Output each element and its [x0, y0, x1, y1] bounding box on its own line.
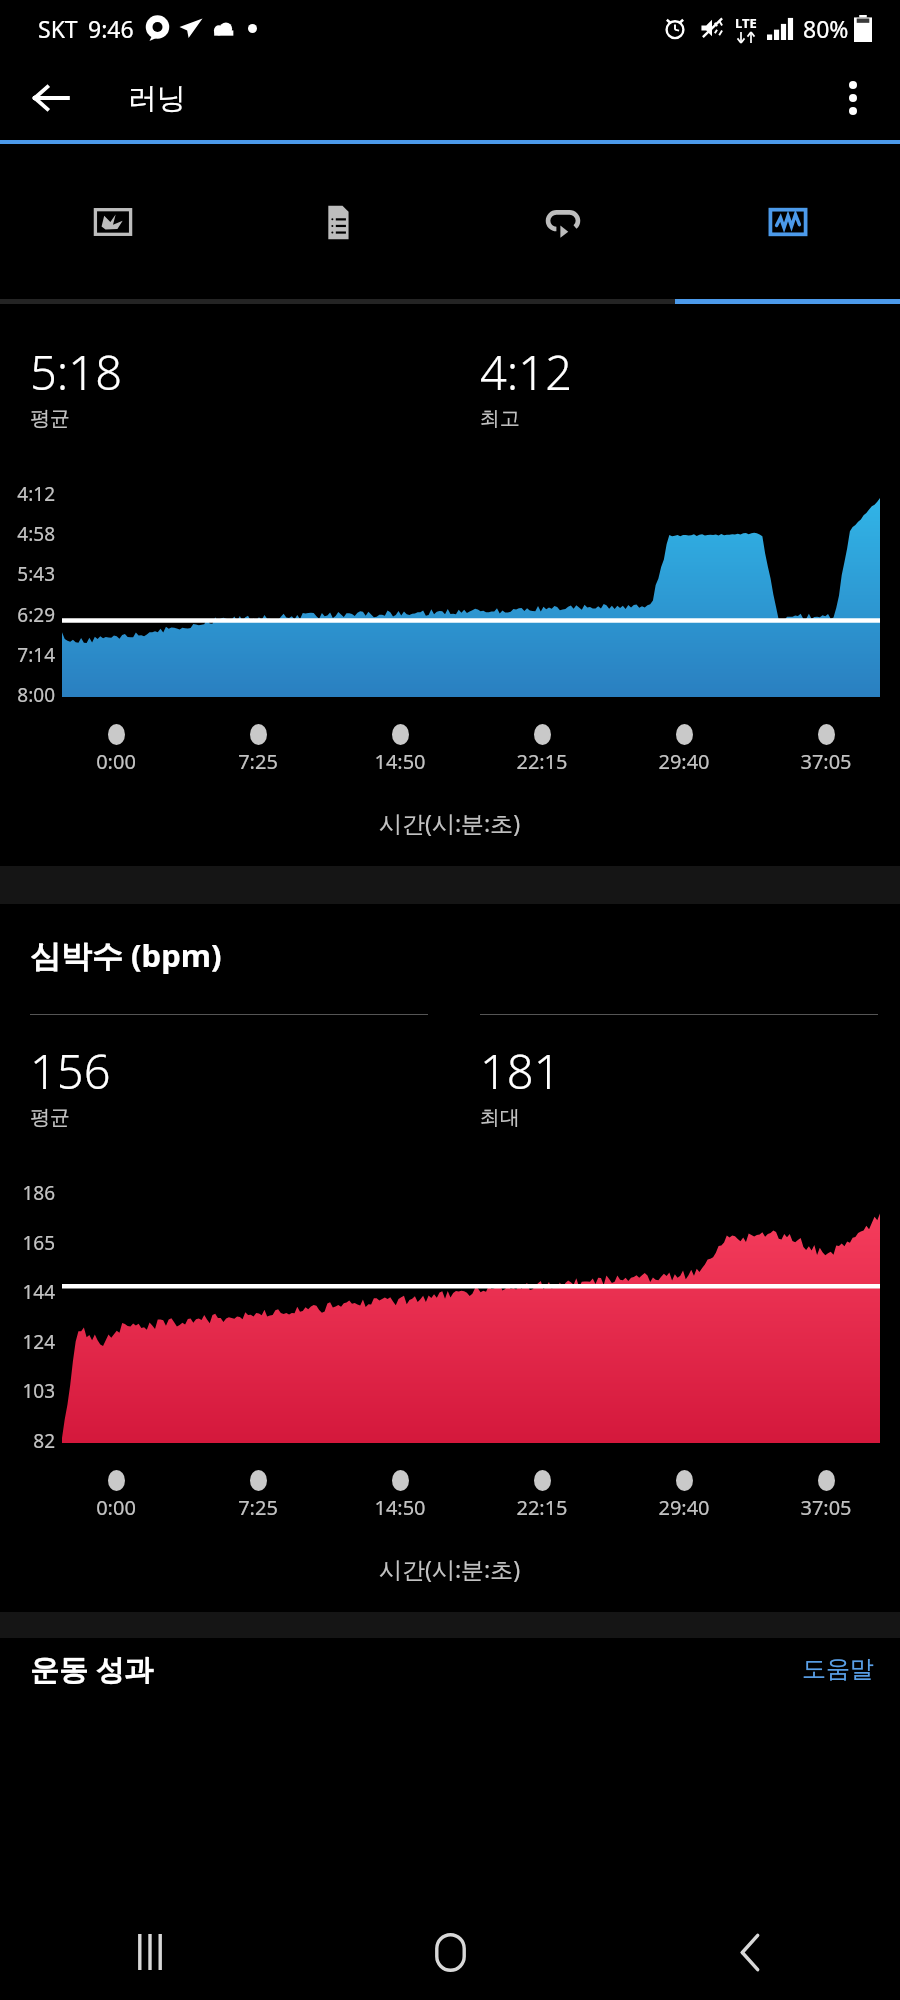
button[interactable]: Details	[225, 144, 450, 299]
staticText: 6:29	[17, 602, 55, 628]
staticText: 186	[22, 1180, 55, 1206]
staticText: 5:43	[17, 561, 55, 587]
button[interactable]: Laps	[450, 144, 675, 299]
staticText: 7:25	[238, 1494, 278, 1521]
staticText: 124	[22, 1329, 55, 1355]
button[interactable]: Home	[300, 1904, 600, 2000]
staticText: 4:58	[17, 521, 55, 547]
button[interactable]: 도움말	[776, 1642, 900, 1696]
staticText: 러닝	[128, 80, 186, 117]
staticText: 14:50	[374, 748, 426, 775]
staticText: 0:00	[96, 1494, 136, 1521]
staticText: 29:40	[658, 1494, 710, 1521]
staticText: 평균	[30, 1105, 70, 1130]
staticText: 시간(시:분:초)	[379, 1553, 521, 1584]
staticText: 103	[22, 1378, 55, 1404]
staticText: 29:40	[658, 748, 710, 775]
staticText: SKT	[38, 13, 78, 44]
button[interactable]: Back	[600, 1904, 900, 2000]
staticText: 14:50	[374, 1494, 426, 1521]
staticText: 도움말	[802, 1654, 874, 1684]
button[interactable]: Recents	[0, 1904, 300, 2000]
staticText: 최고	[480, 406, 520, 431]
staticText: 4:12	[17, 481, 55, 507]
staticText: 156	[30, 1039, 111, 1103]
staticText: 22:15	[516, 748, 568, 775]
staticText: 82	[33, 1428, 55, 1454]
button[interactable]: More options	[824, 69, 882, 127]
button[interactable]: Back	[20, 67, 82, 129]
staticText: 시간(시:분:초)	[379, 807, 521, 838]
staticText: 80%	[803, 13, 849, 44]
button[interactable]: Charts	[675, 144, 900, 299]
staticText: 37:05	[800, 1494, 852, 1521]
staticText: 4:12	[480, 340, 572, 404]
staticText: 165	[22, 1230, 55, 1256]
staticText: 최대	[480, 1105, 520, 1130]
staticText: 22:15	[516, 1494, 568, 1521]
staticText: 0:00	[96, 748, 136, 775]
staticText: 7:25	[238, 748, 278, 775]
staticText: 운동 성과	[30, 1649, 154, 1689]
staticText: 9:46	[88, 13, 134, 44]
staticText: 심박수 (bpm)	[30, 934, 222, 976]
staticText: 평균	[30, 406, 70, 431]
staticText: 8:00	[17, 682, 55, 708]
button[interactable]: Map	[0, 144, 225, 299]
staticText: 5:18	[30, 340, 122, 404]
staticText: 144	[22, 1279, 55, 1305]
staticText: 37:05	[800, 748, 852, 775]
staticText: 7:14	[17, 642, 55, 668]
staticText: 181	[480, 1039, 561, 1103]
staticText: LTE	[735, 14, 757, 32]
